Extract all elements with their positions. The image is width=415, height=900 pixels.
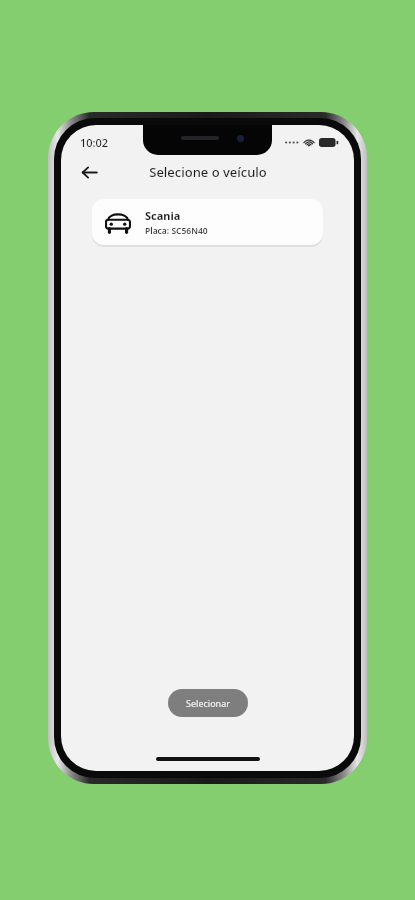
staticText: Scania (145, 208, 181, 223)
button[interactable]: Scania (92, 199, 323, 245)
staticText: Placa: SC56N40 (145, 225, 208, 237)
staticText: Selecionar (186, 697, 230, 709)
button[interactable]: Voltar (73, 156, 105, 188)
staticText: 10:02 (80, 135, 109, 150)
button[interactable]: Selecionar (168, 689, 248, 717)
staticText: Selecione o veículo (149, 163, 267, 181)
